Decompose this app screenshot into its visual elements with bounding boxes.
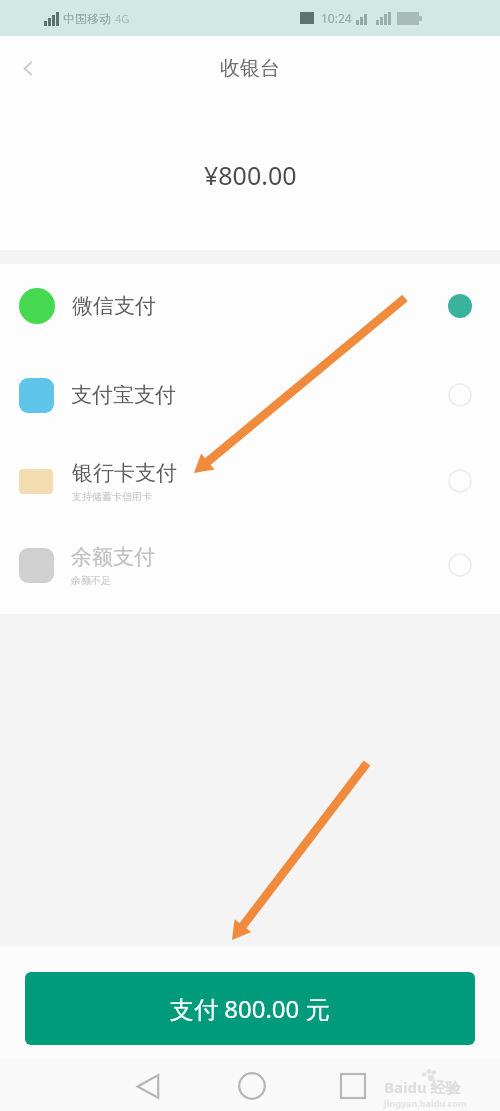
staticText: Baidu 经验 [384,1077,461,1097]
staticText: jingyan.baidu.com [384,1097,467,1109]
button[interactable]: 支付 800.00 元 [25,972,475,1045]
staticText: 微信支付 [72,293,156,319]
button[interactable]: 银行卡支付 [0,444,500,518]
staticText: 余额不足 [71,574,111,587]
staticText: 中国移动 [63,11,111,26]
button[interactable]: Back [125,1063,171,1109]
staticText: 4G [115,11,130,26]
staticText: 10:24 [321,10,352,26]
button[interactable]: Recents [330,1063,376,1109]
button[interactable]: Back [8,48,48,88]
button[interactable]: 微信支付 [0,269,500,343]
staticText: ¥800.00 [204,158,297,192]
staticText: 支付 800.00 元 [170,992,330,1025]
staticText: 收银台 [220,56,280,81]
staticText: 余额支付 [71,544,155,570]
staticText: 银行卡支付 [72,460,177,486]
staticText: 支付宝支付 [71,382,176,408]
staticText: 支持储蓄卡信用卡 [72,490,152,503]
button[interactable]: Home [229,1063,275,1109]
button[interactable]: 余额支付 [0,528,500,602]
button[interactable]: 支付宝支付 [0,358,500,432]
